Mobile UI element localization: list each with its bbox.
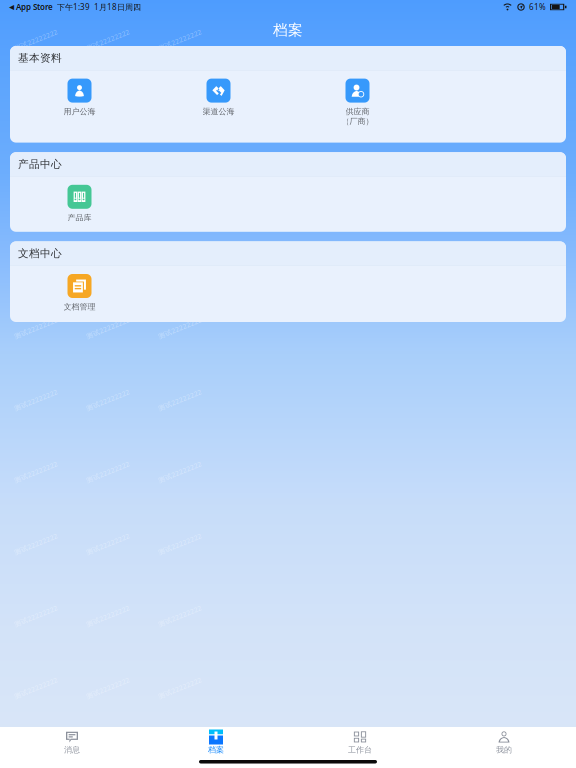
staticText: 渠道公海 xyxy=(202,107,234,116)
button[interactable]: 我的 xyxy=(432,731,576,755)
staticText: 测试22222222 xyxy=(85,36,131,44)
staticText: 消息 xyxy=(64,745,80,755)
staticText: App Store xyxy=(14,2,53,12)
staticText: 测试22222222 xyxy=(13,324,59,332)
staticText: 测试22222222 xyxy=(85,180,131,188)
staticText: 文档管理 xyxy=(63,302,95,312)
staticText: 档案 xyxy=(208,745,224,755)
staticText: 测试22222222 xyxy=(13,468,59,476)
staticText: 供应商 xyxy=(345,107,369,116)
staticText: 测试22222222 xyxy=(13,252,59,260)
staticText: ◀ xyxy=(9,3,14,11)
button[interactable]: 消息 xyxy=(0,731,144,755)
staticText: 测试22222222 xyxy=(85,324,131,332)
button[interactable]: 渠道公海 xyxy=(178,79,258,116)
staticText: 61% xyxy=(529,2,546,12)
button[interactable]: 文档管理 xyxy=(39,274,119,312)
staticText: 测试22222222 xyxy=(157,540,203,548)
staticText: 测试22222222 xyxy=(157,468,203,476)
staticText: 文档中心 xyxy=(18,247,62,260)
button[interactable]: 用户公海 xyxy=(39,79,119,116)
staticText: 档案 xyxy=(273,21,303,39)
button[interactable]: 工作台 xyxy=(288,731,432,755)
staticText: 产品库 xyxy=(67,213,91,223)
staticText: 用户公海 xyxy=(63,107,95,116)
staticText: 测试22222222 xyxy=(85,396,131,404)
button[interactable]: 档案 xyxy=(144,731,288,755)
staticText: 1月18日周四 xyxy=(90,2,141,12)
staticText: 下午1:39 xyxy=(53,2,90,12)
staticText: 工作台 xyxy=(348,745,372,755)
staticText: 测试22222222 xyxy=(157,36,203,44)
staticText: 测试22222222 xyxy=(85,540,131,548)
staticText: 测试22222222 xyxy=(157,324,203,332)
staticText: 我的 xyxy=(496,745,512,755)
staticText: 基本资料 xyxy=(18,51,62,64)
button[interactable]: 产品库 xyxy=(39,185,119,223)
staticText: 测试22222222 xyxy=(13,36,59,44)
staticText: 测试22222222 xyxy=(13,396,59,404)
staticText: （厂商） xyxy=(341,116,373,126)
staticText: 测试22222222 xyxy=(157,756,203,764)
staticText: 产品中心 xyxy=(18,158,62,171)
staticText: 测试22222222 xyxy=(13,540,59,548)
button[interactable]: 供应商 xyxy=(317,79,397,126)
staticText: 测试22222222 xyxy=(85,468,131,476)
staticText: 测试22222222 xyxy=(157,396,203,404)
staticText: 测试22222222 xyxy=(85,108,131,116)
